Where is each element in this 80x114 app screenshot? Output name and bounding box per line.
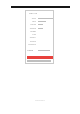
- button[interactable]: Phone number: [25, 27, 54, 30]
- staticText: Postal code: [26, 40, 36, 43]
- button[interactable]: Email address: [25, 23, 54, 26]
- button[interactable]: Last name: [25, 20, 54, 23]
- button[interactable]: Street address: [25, 30, 54, 33]
- staticText: Phone number: [26, 27, 36, 30]
- staticText: Last name: [26, 20, 36, 23]
- staticText: Agree: [27, 49, 34, 52]
- button[interactable]: Postal code: [25, 40, 54, 43]
- staticText: Street address: [26, 30, 36, 33]
- button[interactable]: City: [25, 33, 54, 36]
- staticText: Sign up: [29, 12, 38, 15]
- staticText: Country: [26, 43, 36, 46]
- staticText: Email address: [26, 23, 36, 26]
- button[interactable]: Country: [25, 43, 54, 46]
- button[interactable]: Agree: [27, 49, 56, 52]
- staticText: State / province: [26, 36, 36, 39]
- staticText: City: [26, 33, 36, 36]
- button[interactable]: First name: [25, 17, 54, 20]
- staticText: First name: [26, 17, 36, 20]
- staticText: copyright: [35, 99, 45, 102]
- button[interactable]: State / province: [25, 36, 54, 39]
